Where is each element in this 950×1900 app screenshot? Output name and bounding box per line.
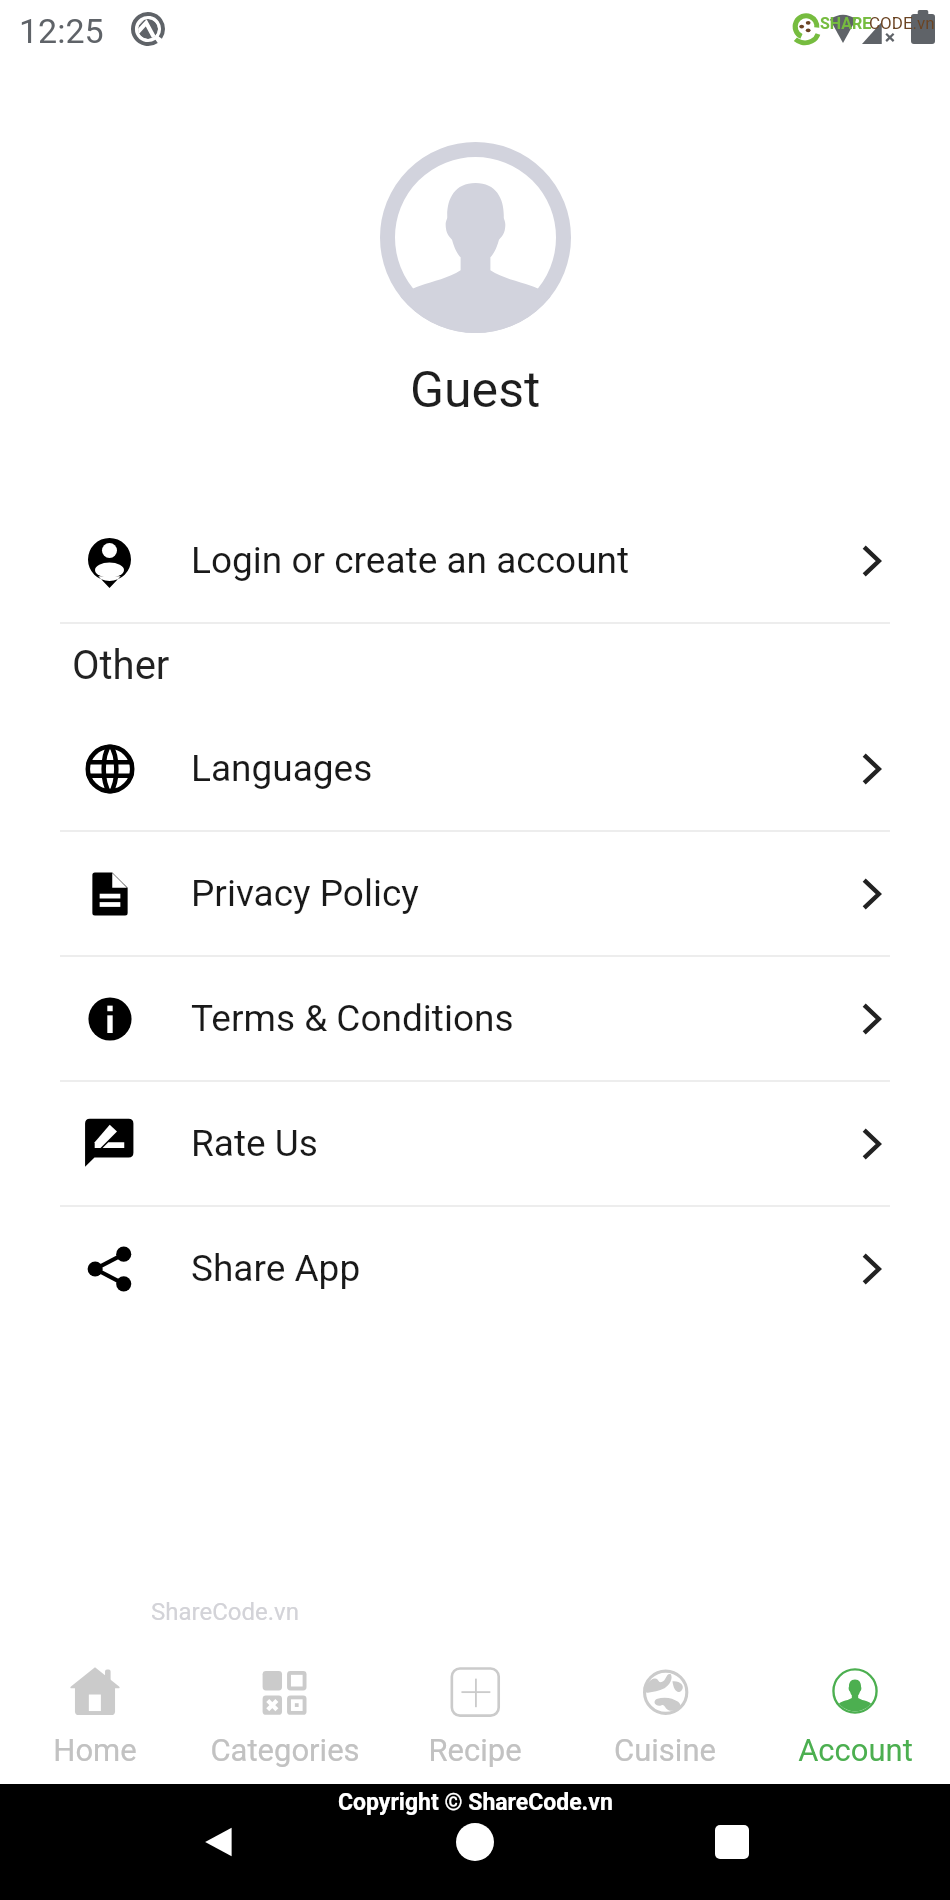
button[interactable]: Recipe — [380, 1660, 570, 1784]
button[interactable]: Rate Us — [0, 1082, 950, 1205]
button[interactable]: Account — [760, 1660, 950, 1784]
staticText: Login or create an account — [191, 539, 630, 582]
staticText: Other — [72, 642, 170, 689]
button[interactable]: Home — [437, 1804, 513, 1880]
button[interactable]: Recent apps — [694, 1804, 770, 1880]
staticText: 12:25 — [19, 11, 104, 51]
staticText: Terms & Conditions — [191, 997, 514, 1040]
button[interactable]: Login or create an account — [0, 499, 950, 622]
staticText: Share App — [191, 1247, 361, 1290]
button[interactable]: Terms & Conditions — [0, 957, 950, 1080]
button[interactable]: Share App — [0, 1207, 950, 1330]
staticText: Languages — [191, 747, 373, 790]
staticText: Guest — [410, 361, 541, 420]
staticText: Categories — [210, 1732, 360, 1768]
button[interactable]: Back — [181, 1804, 257, 1880]
button[interactable]: Cuisine — [570, 1660, 760, 1784]
button[interactable]: Home — [0, 1660, 190, 1784]
staticText: ShareCode.vn — [151, 1598, 299, 1626]
staticText: Cuisine — [614, 1732, 716, 1768]
staticText: Privacy Policy — [191, 872, 419, 915]
button[interactable]: Categories — [190, 1660, 380, 1784]
staticText: Recipe — [428, 1732, 522, 1768]
staticText: Rate Us — [191, 1122, 318, 1165]
staticText: Copyright © ShareCode.vn — [338, 1789, 613, 1816]
staticText: Account — [798, 1732, 913, 1768]
staticText: SHARE — [820, 14, 872, 33]
staticText: Home — [53, 1732, 137, 1768]
button[interactable]: Languages — [0, 707, 950, 830]
staticText: CODE.vn — [869, 13, 935, 33]
button[interactable]: Privacy Policy — [0, 832, 950, 955]
